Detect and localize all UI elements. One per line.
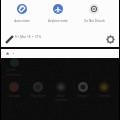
button[interactable]	[78, 82, 88, 92]
staticText: Auto-rotate	[14, 19, 30, 23]
staticText: Support	[71, 94, 95, 98]
staticText: Multi window	[49, 94, 73, 102]
button[interactable]	[99, 82, 109, 92]
button[interactable]: Settings	[105, 34, 116, 45]
staticText: Google	[2, 94, 26, 98]
button[interactable]: Airplane mode	[41, 4, 75, 23]
staticText: Airplane mode	[48, 19, 68, 23]
button[interactable]	[33, 82, 43, 92]
button[interactable]	[56, 82, 66, 92]
button[interactable]	[9, 82, 19, 92]
staticText: Game enhancer	[6, 67, 22, 77]
button[interactable]: Auto-rotate	[5, 4, 39, 23]
button[interactable]: Edit quick settings	[4, 34, 15, 45]
button[interactable]: Do Not Disturb	[77, 4, 111, 23]
staticText: Do Not Disturb	[84, 19, 105, 23]
staticText: Fri, Mar 18 • 31%	[15, 35, 41, 39]
staticText: Cinema	[92, 94, 116, 98]
staticText: Play Store	[26, 94, 50, 98]
